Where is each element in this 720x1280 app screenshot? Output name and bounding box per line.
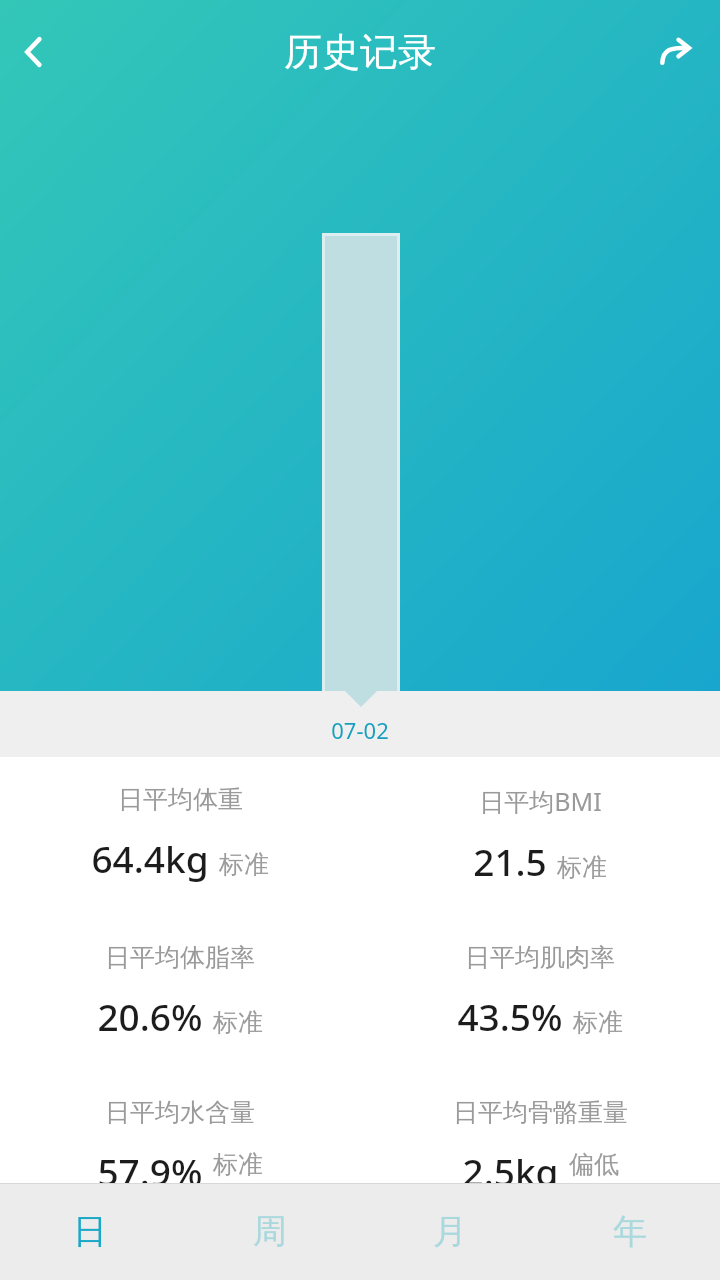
staticText: 日平均水含量	[105, 1097, 255, 1128]
staticText: 标准	[573, 1007, 623, 1038]
staticText: 标准	[557, 852, 607, 883]
staticText: 日	[73, 1210, 107, 1253]
button[interactable]: 日平均水含量	[0, 1097, 360, 1183]
button[interactable]: Back	[4, 22, 64, 82]
staticText: 日平均BMI	[479, 784, 602, 818]
staticText: 年	[613, 1210, 647, 1253]
staticText: 20.6%	[97, 991, 203, 1041]
staticText: 日平均骨骼重量	[453, 1097, 628, 1128]
button[interactable]: 日平均BMI	[360, 784, 720, 886]
staticText: 07-02	[331, 715, 389, 745]
button[interactable]: 日平均体重	[0, 784, 360, 883]
button[interactable]: 月	[360, 1183, 540, 1280]
staticText: 43.5%	[457, 991, 563, 1041]
staticText: 历史记录	[284, 28, 436, 76]
staticText: 偏低	[569, 1149, 619, 1180]
button[interactable]: 日	[0, 1183, 180, 1280]
button[interactable]: Share	[646, 22, 706, 82]
staticText: 标准	[213, 1149, 263, 1180]
button[interactable]: 日平均肌肉率	[360, 942, 720, 1041]
staticText: 21.5	[473, 836, 547, 886]
staticText: 月	[433, 1210, 467, 1253]
staticText: 64.4kg	[91, 833, 209, 883]
staticText: 2.5kg	[462, 1146, 559, 1183]
staticText: 日平均肌肉率	[465, 942, 615, 973]
staticText: 周	[253, 1210, 287, 1253]
button[interactable]: 日平均体脂率	[0, 942, 360, 1041]
button[interactable]: 年	[540, 1183, 720, 1280]
staticText: 57.9%	[97, 1146, 203, 1183]
staticText: 标准	[213, 1007, 263, 1038]
button[interactable]: 周	[180, 1183, 360, 1280]
button[interactable]: 日平均骨骼重量	[360, 1097, 720, 1183]
staticText: 标准	[219, 849, 269, 880]
staticText: 日平均体重	[118, 784, 243, 815]
staticText: 日平均体脂率	[105, 942, 255, 973]
